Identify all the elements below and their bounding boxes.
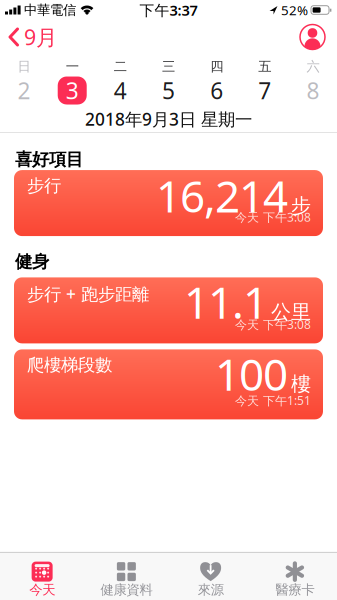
staticText: 四: [210, 58, 223, 75]
button[interactable]: 健康資料: [84, 562, 168, 598]
button[interactable]: 醫療卡: [253, 562, 337, 598]
staticText: 5: [162, 75, 175, 105]
button[interactable]: 9月5日: [144, 75, 192, 105]
staticText: 7: [258, 75, 271, 105]
button[interactable]: 9月4日: [96, 75, 144, 105]
staticText: 52%: [281, 1, 308, 19]
staticText: 今天 下午3:08: [235, 316, 311, 332]
staticText: 六: [306, 58, 319, 75]
staticText: 樓: [291, 372, 311, 396]
staticText: 喜好項目: [15, 149, 83, 170]
staticText: 2: [18, 75, 31, 105]
staticText: 公里: [271, 300, 311, 324]
staticText: 健康資料: [100, 582, 152, 598]
staticText: 2018年9月3日 星期一: [85, 107, 252, 130]
staticText: 16,214: [156, 166, 288, 224]
button[interactable]: 步行: [14, 170, 323, 236]
button[interactable]: 9月7日: [241, 75, 289, 105]
staticText: 6: [210, 75, 223, 105]
button[interactable]: 來源: [168, 562, 253, 598]
staticText: 100: [215, 344, 288, 403]
button[interactable]: 9月2日: [0, 75, 48, 105]
staticText: 爬樓梯段數: [27, 354, 112, 376]
staticText: 8: [306, 75, 319, 105]
staticText: 中華電信: [24, 2, 76, 18]
button[interactable]: 返回 9月: [0, 23, 57, 51]
staticText: 二: [114, 58, 127, 75]
button[interactable]: 步行 + 跑步距離: [14, 277, 323, 343]
staticText: 11.1: [184, 272, 268, 331]
staticText: 今天: [29, 582, 55, 598]
button[interactable]: 9月8日: [289, 75, 337, 105]
staticText: 健身: [15, 251, 49, 272]
staticText: 今天 下午1:51: [235, 392, 311, 408]
button[interactable]: 9月6日: [193, 75, 241, 105]
button[interactable]: 今天: [0, 562, 84, 598]
staticText: 今天 下午3:08: [235, 209, 311, 225]
staticText: 五: [258, 58, 271, 75]
staticText: 步行 + 跑步距離: [27, 282, 149, 305]
staticText: 9月: [24, 23, 57, 51]
staticText: 4: [114, 75, 127, 105]
button[interactable]: 爬樓梯段數: [14, 349, 323, 419]
staticText: 步: [291, 193, 311, 218]
button[interactable]: 個人檔案: [299, 23, 337, 50]
staticText: 來源: [198, 582, 224, 598]
staticText: 下午3:37: [139, 0, 197, 20]
staticText: 一: [66, 58, 79, 75]
button[interactable]: 9月3日: [48, 75, 96, 105]
staticText: 3: [66, 75, 79, 105]
staticText: 醫療卡: [275, 582, 314, 598]
staticText: 日: [18, 58, 31, 75]
staticText: 步行: [27, 175, 61, 196]
staticText: 三: [162, 58, 175, 75]
